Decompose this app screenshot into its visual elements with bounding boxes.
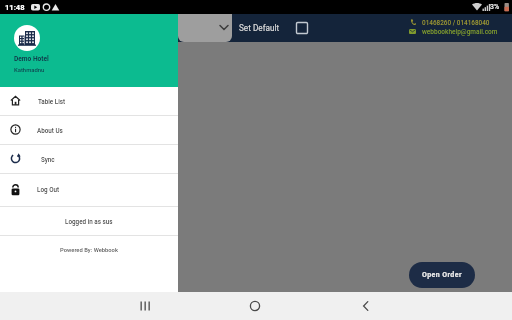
staticText: Table List: [38, 98, 66, 105]
staticText: Kathmadnu: [14, 67, 45, 74]
staticText: Set Default: [239, 23, 280, 33]
staticText: 11:48: [5, 3, 25, 12]
staticText: About Us: [37, 127, 63, 134]
staticText: 01468260 / 014168040: [422, 19, 490, 27]
staticText: Powered By: Webbook: [60, 247, 118, 254]
staticText: webbookhelp@gmail.com: [422, 28, 498, 36]
staticText: Logged in as sus: [65, 218, 113, 225]
staticText: Log Out: [37, 186, 60, 193]
staticText: Sync: [41, 156, 55, 163]
staticText: 3%: [490, 3, 500, 11]
staticText: Open Order: [422, 271, 462, 279]
staticText: Demo Hotel: [14, 55, 49, 63]
